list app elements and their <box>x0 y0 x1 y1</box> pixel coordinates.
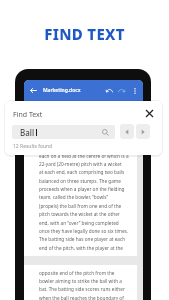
button[interactable]: Back <box>28 85 39 96</box>
staticText: balanced on three stumps. The game <box>39 178 121 184</box>
staticText: Ball <box>20 127 35 138</box>
staticText: at each end, each comprising two bails <box>39 169 125 175</box>
staticText: end, with an “over” being completed <box>39 220 119 226</box>
staticText: once they have legally done so six times… <box>39 228 129 234</box>
staticText: pitch towards the wicket at the other <box>39 211 120 217</box>
staticText: opposite end of the pitch from the <box>39 270 115 276</box>
staticText: proceeds when a player on the fielding <box>39 186 125 192</box>
button[interactable]: Undo <box>104 85 115 96</box>
button[interactable]: More options <box>129 85 140 96</box>
staticText: each on a field at the centre of which i… <box>39 153 129 159</box>
staticText: The batting side has one player at each <box>39 236 126 242</box>
staticText: is a 22-yard pitch with a wicket at each <box>39 111 124 117</box>
staticText: Find Text <box>13 110 43 120</box>
button[interactable]: Ball <box>12 125 115 139</box>
staticText: Marketing.docx <box>43 87 81 94</box>
staticText: bat. The batting side scores runs either <box>39 286 125 292</box>
staticText: end of the pitch, with the player at the <box>39 245 124 251</box>
button[interactable]: Previous result <box>120 124 134 139</box>
button[interactable]: Close <box>140 104 158 122</box>
button[interactable]: Redo <box>116 85 127 96</box>
staticText: game played between two teams of <box>39 144 118 150</box>
staticText: 22-yard (20-metre) pitch with a wicket <box>39 161 122 167</box>
staticText: when the ball reaches the boundary of <box>39 295 124 300</box>
staticText: bowler aiming to strike the ball with a <box>39 278 122 284</box>
staticText: FIND TEXT <box>0 24 169 44</box>
staticText: 12 Results found <box>13 143 53 150</box>
staticText: (propels) the ball from one end of the <box>39 203 122 209</box>
button[interactable]: Next result <box>136 124 150 139</box>
staticText: attempting to score runs, while the othe… <box>39 128 130 134</box>
staticText: team, called the bowler, “bowls” <box>39 194 109 200</box>
staticText: team fields. Cricket is a bat-and-ball <box>39 136 118 142</box>
